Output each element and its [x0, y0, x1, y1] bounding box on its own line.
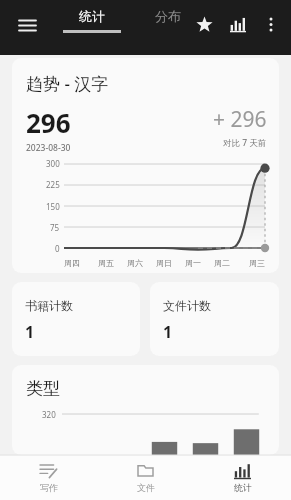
button[interactable]: 类型: [12, 365, 279, 455]
staticText: 300: [46, 158, 60, 169]
staticText: 225: [46, 179, 60, 190]
staticText: 分布: [155, 8, 181, 24]
staticText: 周六: [127, 258, 143, 268]
button[interactable]: Menu: [10, 8, 44, 42]
staticText: 统计: [234, 482, 252, 493]
staticText: 320: [42, 409, 56, 420]
button[interactable]: Favorite: [187, 7, 221, 41]
staticText: 周二: [214, 258, 230, 268]
staticText: 周一: [185, 258, 201, 268]
staticText: 0: [55, 243, 60, 254]
button[interactable]: 写作: [0, 455, 97, 500]
button[interactable]: More options: [255, 8, 287, 40]
staticText: 150: [46, 201, 60, 212]
button[interactable]: 分布: [147, 6, 189, 35]
button[interactable]: 趋势 - 汉字: [12, 58, 279, 273]
staticText: 类型: [26, 378, 60, 399]
staticText: 2023-08-30: [26, 142, 71, 154]
staticText: 写作: [40, 482, 58, 493]
button[interactable]: 文件: [97, 455, 194, 500]
staticText: 文件计数: [163, 298, 211, 313]
button[interactable]: 文件计数: [150, 282, 279, 356]
button[interactable]: 统计: [194, 455, 291, 500]
button[interactable]: Chart: [221, 7, 255, 41]
staticText: 周三: [249, 258, 265, 268]
staticText: + 296: [213, 105, 267, 134]
staticText: 1: [163, 321, 173, 343]
staticText: 周四: [64, 258, 80, 268]
button[interactable]: 书籍计数: [12, 282, 140, 356]
staticText: 趋势 - 汉字: [26, 72, 109, 95]
staticText: 周五: [98, 258, 114, 268]
staticText: 书籍计数: [25, 298, 73, 313]
staticText: 296: [26, 105, 71, 140]
staticText: 对比 7 天前: [223, 137, 267, 149]
staticText: 文件: [137, 482, 155, 493]
staticText: 1: [25, 321, 35, 343]
staticText: 75: [50, 222, 60, 233]
staticText: 统计: [79, 8, 105, 24]
staticText: 周日: [156, 258, 172, 268]
button[interactable]: 统计: [55, 6, 129, 35]
